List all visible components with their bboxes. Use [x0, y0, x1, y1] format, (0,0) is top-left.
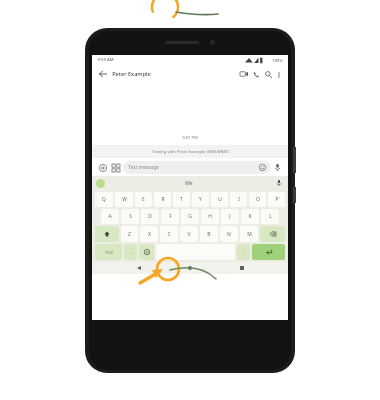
button[interactable]: Voice input — [271, 161, 284, 174]
button[interactable]: Voice typing — [274, 178, 284, 188]
button[interactable]: , — [124, 244, 137, 260]
button[interactable]: Back — [97, 68, 109, 80]
button[interactable]: O — [249, 192, 266, 207]
staticText: E — [142, 196, 145, 203]
staticText: Texting with Peter Example (SMS/MMS) — [152, 149, 229, 155]
staticText: G — [188, 213, 192, 220]
button[interactable]: GIF — [109, 161, 122, 174]
button[interactable]: Google Assistant — [96, 179, 105, 188]
button[interactable]: Text message — [123, 161, 271, 174]
button[interactable]: B — [200, 226, 218, 242]
button[interactable]: K — [241, 209, 259, 224]
button[interactable]: U — [211, 192, 228, 207]
button[interactable]: C — [160, 226, 178, 242]
button[interactable]: Video call — [238, 68, 250, 80]
staticText: F — [169, 213, 172, 220]
staticText: O — [256, 196, 260, 203]
staticText: 100% — [272, 58, 283, 63]
button[interactable]: S — [121, 209, 139, 224]
staticText: I — [238, 196, 240, 203]
button[interactable]: M — [240, 226, 258, 242]
button[interactable]: X — [140, 226, 158, 242]
button[interactable]: Add attachment — [96, 161, 109, 174]
button[interactable]: Home — [185, 263, 195, 273]
staticText: U — [218, 196, 222, 203]
button[interactable]: Search — [262, 68, 274, 80]
staticText: T — [180, 196, 183, 203]
staticText: V — [187, 231, 191, 238]
button[interactable]: A — [101, 209, 119, 224]
staticText: S — [129, 213, 132, 220]
button[interactable]: Enter — [252, 244, 285, 260]
staticText: . — [243, 249, 245, 255]
button[interactable]: Back — [134, 263, 144, 273]
staticText: W — [122, 196, 127, 203]
button[interactable]: H — [201, 209, 219, 224]
staticText: Q — [102, 196, 106, 203]
button[interactable]: V — [180, 226, 198, 242]
button[interactable]: Y — [192, 192, 209, 207]
button[interactable]: F — [161, 209, 179, 224]
button[interactable]: Call — [250, 68, 262, 80]
button[interactable]: R — [154, 192, 171, 207]
staticText: X — [148, 231, 151, 238]
staticText: H — [208, 213, 212, 220]
button[interactable]: Q — [95, 192, 113, 207]
button[interactable]: E — [135, 192, 152, 207]
button[interactable]: ?123 — [95, 244, 122, 260]
staticText: B — [207, 231, 211, 238]
button[interactable]: T — [173, 192, 190, 207]
staticText: R — [161, 196, 165, 203]
button[interactable]: More options — [274, 70, 283, 79]
staticText: 9:59 AM — [97, 57, 114, 63]
button[interactable]: G — [181, 209, 199, 224]
button[interactable]: Key — [95, 226, 119, 242]
staticText: M — [247, 231, 252, 238]
button[interactable]: Recents — [237, 263, 247, 273]
staticText: Peter Example — [112, 70, 151, 78]
button[interactable]: L — [261, 209, 279, 224]
button[interactable]: Space — [156, 244, 235, 260]
staticText: L — [269, 213, 272, 220]
staticText: C — [167, 231, 171, 238]
button[interactable]: Emoji — [139, 244, 154, 260]
button[interactable]: W — [115, 192, 133, 207]
button[interactable]: J — [221, 209, 239, 224]
button[interactable]: . — [237, 244, 250, 260]
staticText: Me — [185, 180, 193, 187]
staticText: N — [227, 231, 231, 238]
button[interactable]: Z — [121, 226, 138, 242]
button[interactable]: I — [230, 192, 247, 207]
staticText: J — [229, 213, 231, 220]
staticText: Text message — [128, 164, 159, 171]
button[interactable]: Key — [260, 226, 285, 242]
staticText: 9:57 PM — [182, 135, 198, 141]
button[interactable]: N — [220, 226, 238, 242]
staticText: K — [248, 213, 252, 220]
staticText: Y — [199, 196, 202, 203]
staticText: ?123 — [105, 250, 113, 255]
staticText: D — [148, 213, 152, 220]
staticText: A — [108, 213, 112, 220]
staticText: , — [130, 249, 132, 255]
staticText: P — [275, 196, 279, 203]
button[interactable]: D — [141, 209, 159, 224]
staticText: Z — [128, 231, 131, 238]
button[interactable]: P — [268, 192, 285, 207]
